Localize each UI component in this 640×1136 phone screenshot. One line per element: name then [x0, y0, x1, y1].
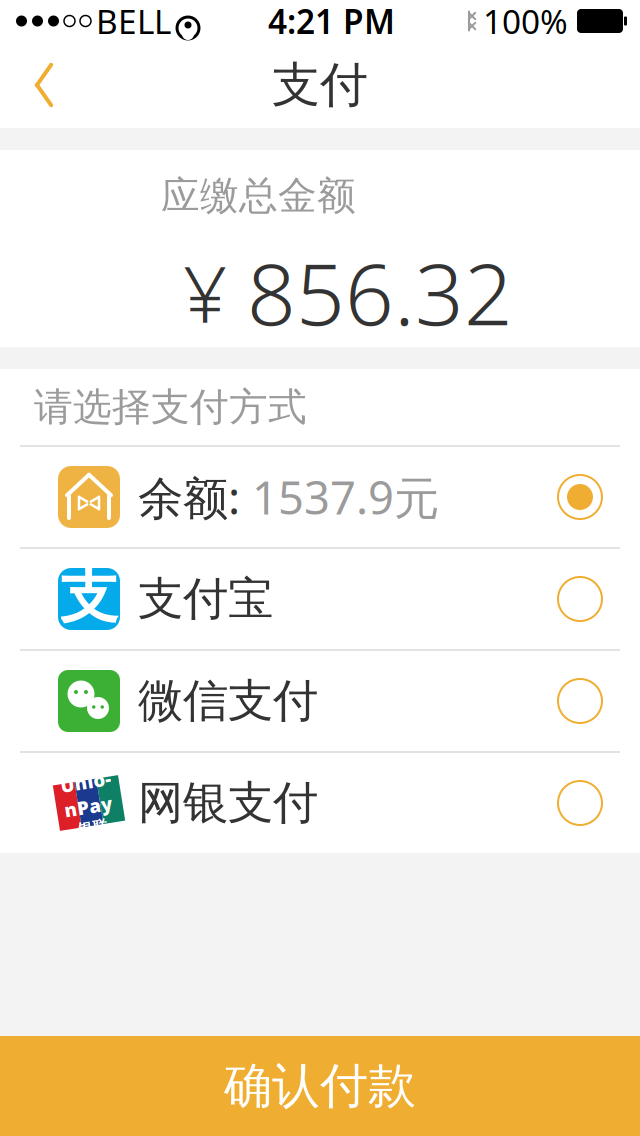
staticText: ¥ [183, 241, 227, 344]
button[interactable]: 确认付款 [0, 1036, 640, 1136]
staticText: 微信支付 [138, 673, 318, 729]
button[interactable]: Back [0, 42, 88, 128]
staticText: BELL [96, 0, 171, 43]
staticText: 支付 [272, 55, 368, 114]
staticText: 4:21 PM [268, 0, 395, 43]
staticText: 银联 [74, 819, 104, 837]
button[interactable]: 支 [0, 549, 640, 649]
staticText: 网银支付 [138, 775, 318, 831]
staticText: 应缴总金额 [161, 172, 356, 220]
staticText: 100% [483, 0, 568, 43]
staticText: 请选择支付方式 [34, 383, 307, 431]
staticText: UnionPay [63, 769, 114, 819]
staticText: 余额: [138, 467, 252, 527]
button[interactable]: 微信支付 [0, 651, 640, 751]
staticText: 1537.9元 [252, 467, 439, 527]
button[interactable]: 余额: [0, 447, 640, 547]
staticText: 支 [59, 561, 118, 633]
staticText: 支付宝 [138, 571, 273, 627]
button[interactable]: UnionPay [0, 753, 640, 853]
staticText: 856.32 [247, 236, 513, 349]
staticText: 确认付款 [224, 1056, 416, 1115]
